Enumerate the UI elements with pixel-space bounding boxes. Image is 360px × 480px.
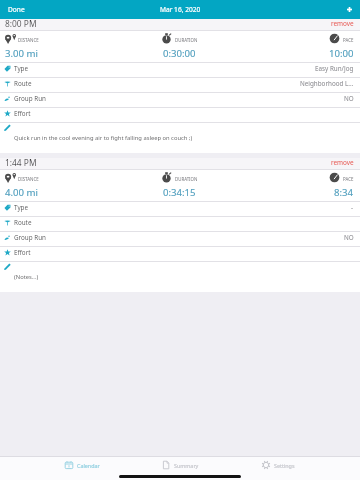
staticText: Group Run <box>14 233 46 242</box>
button[interactable]: DISTANCE <box>0 30 120 60</box>
staticText: Quick run in the cool evening air to fig… <box>14 134 193 142</box>
staticText: remove <box>331 158 354 167</box>
button[interactable]: DURATION <box>120 169 240 199</box>
button[interactable]: PACE <box>240 30 360 60</box>
staticText: 8:34 <box>334 186 354 199</box>
staticText: remove <box>331 19 354 28</box>
staticText: Group Run <box>14 94 46 103</box>
staticText: NO <box>344 233 354 242</box>
staticText: Settings <box>274 462 295 469</box>
button[interactable]: Done <box>0 2 33 17</box>
staticText: Mar 16, 2020 <box>160 5 201 14</box>
staticText: Effort <box>14 109 31 118</box>
button[interactable]: Group Run <box>0 93 360 108</box>
staticText: 4.00 mi <box>5 186 38 199</box>
staticText: 0:30:00 <box>163 47 196 60</box>
button[interactable]: remove <box>323 158 360 169</box>
button[interactable]: PACE <box>240 169 360 199</box>
staticText: 10:00 <box>329 47 354 60</box>
staticText: Type <box>14 64 29 73</box>
button[interactable]: Group Run <box>0 232 360 247</box>
button[interactable]: Summary <box>131 460 229 470</box>
staticText: PACE <box>343 176 354 182</box>
staticText: 3.00 mi <box>5 47 38 60</box>
staticText: 8:00 PM <box>5 18 37 29</box>
staticText: Done <box>8 5 25 14</box>
button[interactable]: Effort <box>0 247 360 262</box>
staticText: DURATION <box>175 176 198 182</box>
staticText: Route <box>14 218 32 227</box>
button[interactable]: Quick run in the cool evening air to fig… <box>0 123 360 153</box>
button[interactable]: Effort <box>0 108 360 123</box>
staticText: Route <box>14 79 32 88</box>
button[interactable]: (Notes...) <box>0 262 360 292</box>
button[interactable]: Route <box>0 78 360 93</box>
staticText: DISTANCE <box>18 37 39 43</box>
staticText: NO <box>344 94 354 103</box>
button[interactable]: Type <box>0 202 360 217</box>
staticText: - <box>351 203 354 212</box>
staticText: 1:44 PM <box>5 157 37 168</box>
staticText: (Notes...) <box>14 273 39 281</box>
button[interactable]: Add workout <box>341 3 360 16</box>
staticText: Easy Run/Jog <box>315 64 354 73</box>
button[interactable]: DISTANCE <box>0 169 120 199</box>
staticText: DISTANCE <box>18 176 39 182</box>
staticText: PACE <box>343 37 354 43</box>
button[interactable]: Calendar <box>33 460 131 470</box>
staticText: Neighborhood L... <box>300 79 354 88</box>
button[interactable]: Route <box>0 217 360 232</box>
staticText: Summary <box>174 462 199 469</box>
button[interactable]: remove <box>323 19 360 30</box>
button[interactable]: DURATION <box>120 30 240 60</box>
staticText: 0:34:15 <box>163 186 196 199</box>
staticText: Calendar <box>77 462 100 469</box>
staticText: Effort <box>14 248 31 257</box>
staticText: Type <box>14 203 29 212</box>
button[interactable]: Type <box>0 63 360 78</box>
staticText: DURATION <box>175 37 198 43</box>
button[interactable]: Settings <box>229 460 327 470</box>
